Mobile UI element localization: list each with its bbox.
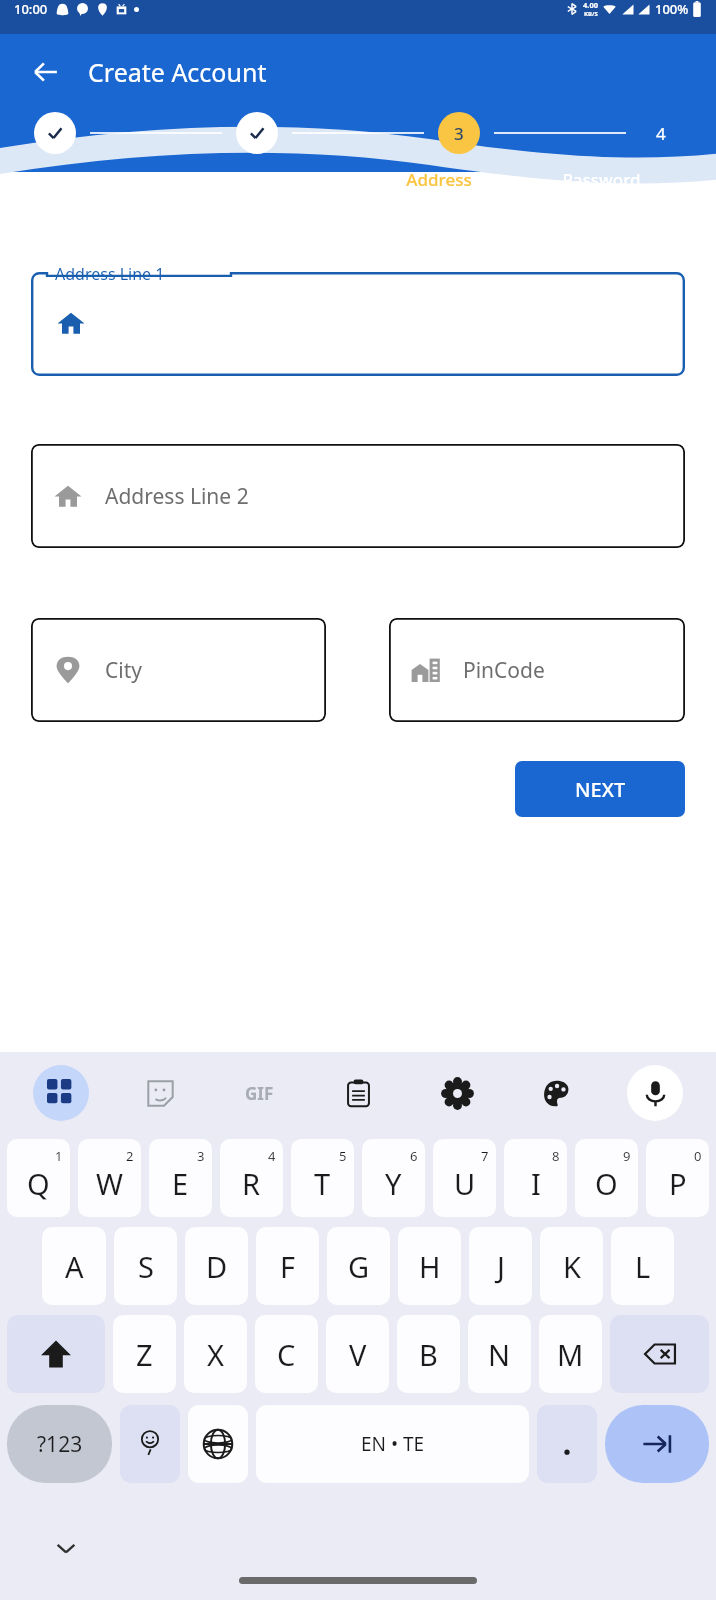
button[interactable]: Clipboard — [330, 1065, 386, 1121]
button[interactable]: Theme — [528, 1065, 584, 1121]
staticText: KB/S — [584, 10, 598, 18]
staticText: 2 — [126, 1147, 134, 1165]
button[interactable]: L — [611, 1227, 674, 1305]
button[interactable]: Apps — [33, 1065, 89, 1121]
staticText: C — [277, 1335, 296, 1374]
staticText: Y — [385, 1164, 402, 1203]
button[interactable]: PinCode — [389, 618, 685, 722]
staticText: 5 — [339, 1147, 347, 1165]
button[interactable]: Backspace — [610, 1315, 709, 1393]
button[interactable]: V — [326, 1315, 389, 1393]
staticText: N — [488, 1335, 511, 1374]
button[interactable]: H — [398, 1227, 461, 1305]
button[interactable] — [236, 112, 278, 154]
staticText: W — [96, 1164, 123, 1203]
button[interactable]: C — [255, 1315, 318, 1393]
button[interactable]: A — [42, 1227, 106, 1305]
staticText: Z — [136, 1335, 153, 1374]
button[interactable]: N — [468, 1315, 531, 1393]
button[interactable]: W — [78, 1139, 141, 1217]
staticText: Address — [406, 168, 472, 191]
staticText: U — [454, 1164, 476, 1203]
staticText: 4 — [268, 1147, 276, 1165]
staticText: 4.00 — [583, 0, 598, 10]
staticText: NEXT — [575, 776, 626, 803]
staticText: Q — [27, 1164, 50, 1203]
staticText: 6 — [410, 1147, 418, 1165]
staticText: J — [497, 1247, 505, 1286]
button[interactable]: Shift — [7, 1315, 105, 1393]
button[interactable]: Q — [7, 1139, 70, 1217]
staticText: X — [207, 1335, 224, 1374]
button[interactable]: Z — [113, 1315, 176, 1393]
button[interactable]: Hide keyboard — [46, 1528, 86, 1568]
staticText: PinCode — [463, 656, 545, 685]
button[interactable]: O — [575, 1139, 638, 1217]
button[interactable]: T — [291, 1139, 354, 1217]
staticText: 3 — [454, 122, 464, 145]
button[interactable]: City — [31, 618, 326, 722]
button[interactable]: 3 — [438, 112, 480, 154]
staticText: ?123 — [37, 1430, 83, 1459]
staticText: 1 — [55, 1147, 63, 1165]
button[interactable]: Y — [362, 1139, 425, 1217]
staticText: P — [669, 1164, 687, 1203]
button[interactable]: NEXT — [515, 761, 685, 817]
button[interactable]: Language — [188, 1405, 248, 1483]
staticText: R — [242, 1164, 261, 1203]
button[interactable]: EN • TE — [256, 1405, 529, 1483]
button[interactable]: Address Line 2 — [31, 444, 685, 548]
staticText: F — [280, 1247, 296, 1286]
button[interactable]: ?123 — [7, 1405, 112, 1483]
button[interactable]: Address Line 1 — [31, 272, 685, 376]
staticText: D — [206, 1247, 228, 1286]
staticText: K — [563, 1247, 581, 1286]
button[interactable]: J — [469, 1227, 532, 1305]
staticText: A — [65, 1247, 84, 1286]
staticText: 4 — [656, 122, 666, 145]
button[interactable]: F — [256, 1227, 319, 1305]
staticText: V — [349, 1335, 367, 1374]
staticText: 9 — [623, 1147, 631, 1165]
staticText: M — [557, 1335, 584, 1374]
button[interactable]: Back — [26, 52, 66, 92]
staticText: O — [595, 1164, 618, 1203]
button[interactable]: D — [185, 1227, 248, 1305]
staticText: 7 — [481, 1147, 489, 1165]
staticText: L — [635, 1247, 651, 1286]
button[interactable]: G — [327, 1227, 390, 1305]
button[interactable]: Enter — [605, 1405, 709, 1483]
button[interactable]: I — [504, 1139, 567, 1217]
button[interactable]: Sticker — [132, 1065, 188, 1121]
button[interactable]: R — [220, 1139, 283, 1217]
button[interactable]: K — [540, 1227, 603, 1305]
staticText: B — [419, 1335, 438, 1374]
button[interactable]: E — [149, 1139, 212, 1217]
staticText: Address Line 1 — [55, 263, 165, 285]
button[interactable]: M — [539, 1315, 602, 1393]
staticText: Password — [562, 168, 641, 191]
staticText: H — [419, 1247, 441, 1286]
staticText: 10:00 — [14, 0, 48, 18]
button[interactable]: 4 — [640, 112, 682, 154]
staticText: EN • TE — [361, 1431, 425, 1457]
button[interactable]: Period — [537, 1405, 597, 1483]
staticText: T — [314, 1164, 331, 1203]
button[interactable]: Voice input — [627, 1065, 683, 1121]
button[interactable]: Settings — [429, 1065, 485, 1121]
button[interactable]: P — [646, 1139, 709, 1217]
staticText: G — [348, 1247, 370, 1286]
staticText: I — [531, 1164, 541, 1203]
button[interactable]: Emoji — [120, 1405, 180, 1483]
button[interactable]: S — [114, 1227, 177, 1305]
staticText: Address Line 2 — [105, 482, 249, 511]
button[interactable]: X — [184, 1315, 247, 1393]
button[interactable]: U — [433, 1139, 496, 1217]
button[interactable]: B — [397, 1315, 460, 1393]
staticText: Account — [82, 168, 149, 191]
button[interactable] — [34, 112, 76, 154]
staticText: 8 — [552, 1147, 560, 1165]
staticText: City — [105, 656, 142, 685]
button[interactable]: GIF — [231, 1065, 287, 1121]
staticText: E — [172, 1164, 189, 1203]
